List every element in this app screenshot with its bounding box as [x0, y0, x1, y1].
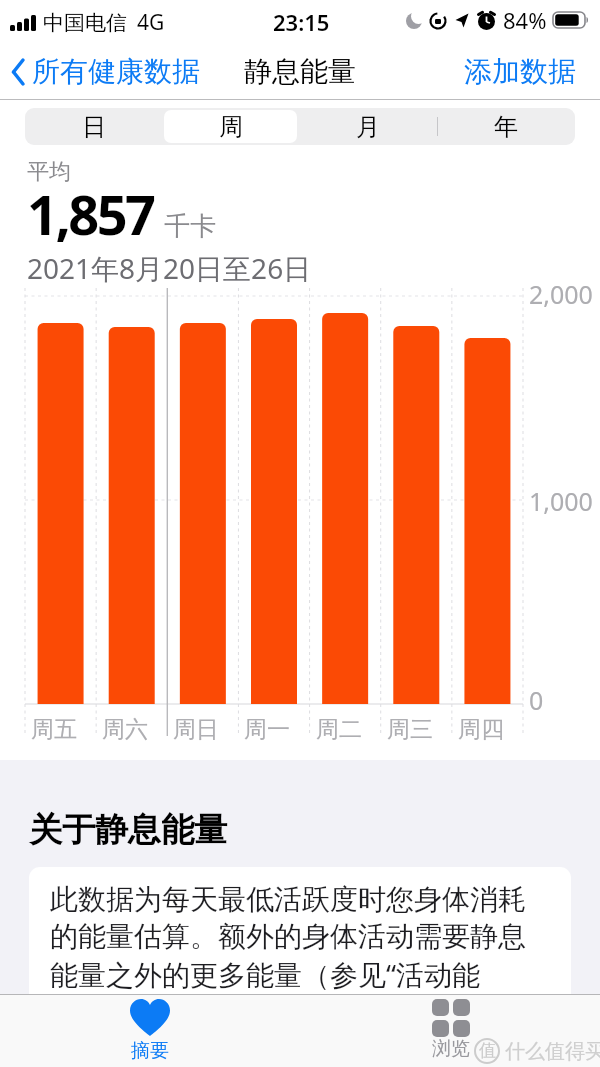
button[interactable]: 日 [25, 108, 162, 145]
staticText: 84% [503, 5, 547, 35]
staticText: 平均 [27, 158, 71, 186]
button[interactable]: 此数据为每天最低活跃度时您身体消耗的能量估算。额外的身体活动需要静息能量之外的更… [29, 867, 571, 994]
staticText: 周四 [458, 715, 504, 744]
staticText: 千卡 [164, 210, 216, 243]
staticText: 23:15 [273, 7, 330, 37]
staticText: 周二 [316, 715, 362, 744]
button[interactable]: 添加数据 [464, 54, 576, 89]
staticText: 月 [356, 112, 380, 142]
staticText: 周六 [102, 715, 148, 744]
staticText: 关于静息能量 [29, 809, 227, 851]
staticText: 日 [82, 112, 106, 142]
button[interactable]: 摘要 [113, 997, 187, 1063]
staticText: 浏览 [432, 1037, 470, 1061]
button[interactable]: 月 [299, 108, 437, 145]
staticText: 静息能量 [244, 54, 356, 89]
button[interactable]: 所有健康数据 [10, 54, 200, 89]
staticText: 0 [529, 683, 544, 717]
staticText: 年 [494, 112, 518, 142]
staticText: 周五 [31, 715, 77, 744]
staticText: 1,857 [27, 177, 154, 251]
button[interactable]: 周 [164, 110, 297, 143]
staticText: 2,000 [529, 277, 593, 311]
button[interactable]: 年 [437, 108, 575, 145]
staticText: 4G [137, 8, 165, 37]
button[interactable]: 浏览 [414, 999, 488, 1061]
staticText: 周一 [244, 715, 290, 744]
staticText: 值 [479, 1040, 496, 1061]
staticText: 什么值得买 [505, 1039, 600, 1064]
staticText: 中国电信 [43, 10, 127, 36]
staticText: 周 [219, 112, 243, 142]
staticText: 周日 [173, 715, 219, 744]
staticText: 周三 [387, 715, 433, 744]
staticText: 摘要 [131, 1039, 169, 1063]
staticText: 所有健康数据 [32, 54, 200, 89]
staticText: 1,000 [529, 484, 593, 518]
staticText: 2021年8月20日至26日 [27, 249, 312, 287]
staticText: 此数据为每天最低活跃度时您身体消耗的能量估算。额外的身体活动需要静息能量之外的更… [50, 882, 553, 994]
